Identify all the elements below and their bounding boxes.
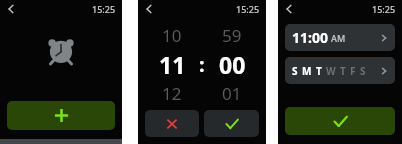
staticText: 12 — [162, 82, 182, 105]
button[interactable]: Back — [282, 2, 296, 16]
button[interactable]: Back — [142, 2, 156, 16]
staticText: M — [302, 64, 312, 78]
staticText: T — [340, 64, 346, 78]
staticText: : — [199, 51, 205, 78]
staticText: W — [326, 64, 336, 78]
button[interactable]: 11:00 — [285, 24, 395, 51]
staticText: T — [316, 64, 322, 78]
button[interactable]: 00 — [209, 49, 255, 80]
staticText: 59 — [222, 24, 242, 47]
staticText: AM — [331, 32, 346, 44]
button[interactable]: Confirm — [204, 110, 259, 137]
staticText: 01 — [222, 82, 242, 105]
staticText: S — [360, 64, 366, 78]
button[interactable]: Cancel — [145, 110, 199, 137]
staticText: 11 — [159, 49, 186, 80]
button[interactable]: Add alarm — [7, 101, 115, 130]
staticText: 15:25 — [372, 3, 396, 15]
staticText: S — [292, 64, 298, 78]
button[interactable]: Back — [4, 2, 18, 16]
staticText: 00 — [219, 49, 246, 80]
staticText: 11:00 — [292, 28, 328, 47]
button[interactable]: S — [285, 57, 395, 84]
button[interactable]: 11 — [149, 49, 195, 80]
button[interactable]: Save alarm — [285, 107, 395, 135]
staticText: 10 — [162, 24, 182, 47]
staticText: 15:25 — [92, 3, 116, 15]
staticText: 15:25 — [236, 3, 260, 15]
staticText: F — [350, 64, 356, 78]
